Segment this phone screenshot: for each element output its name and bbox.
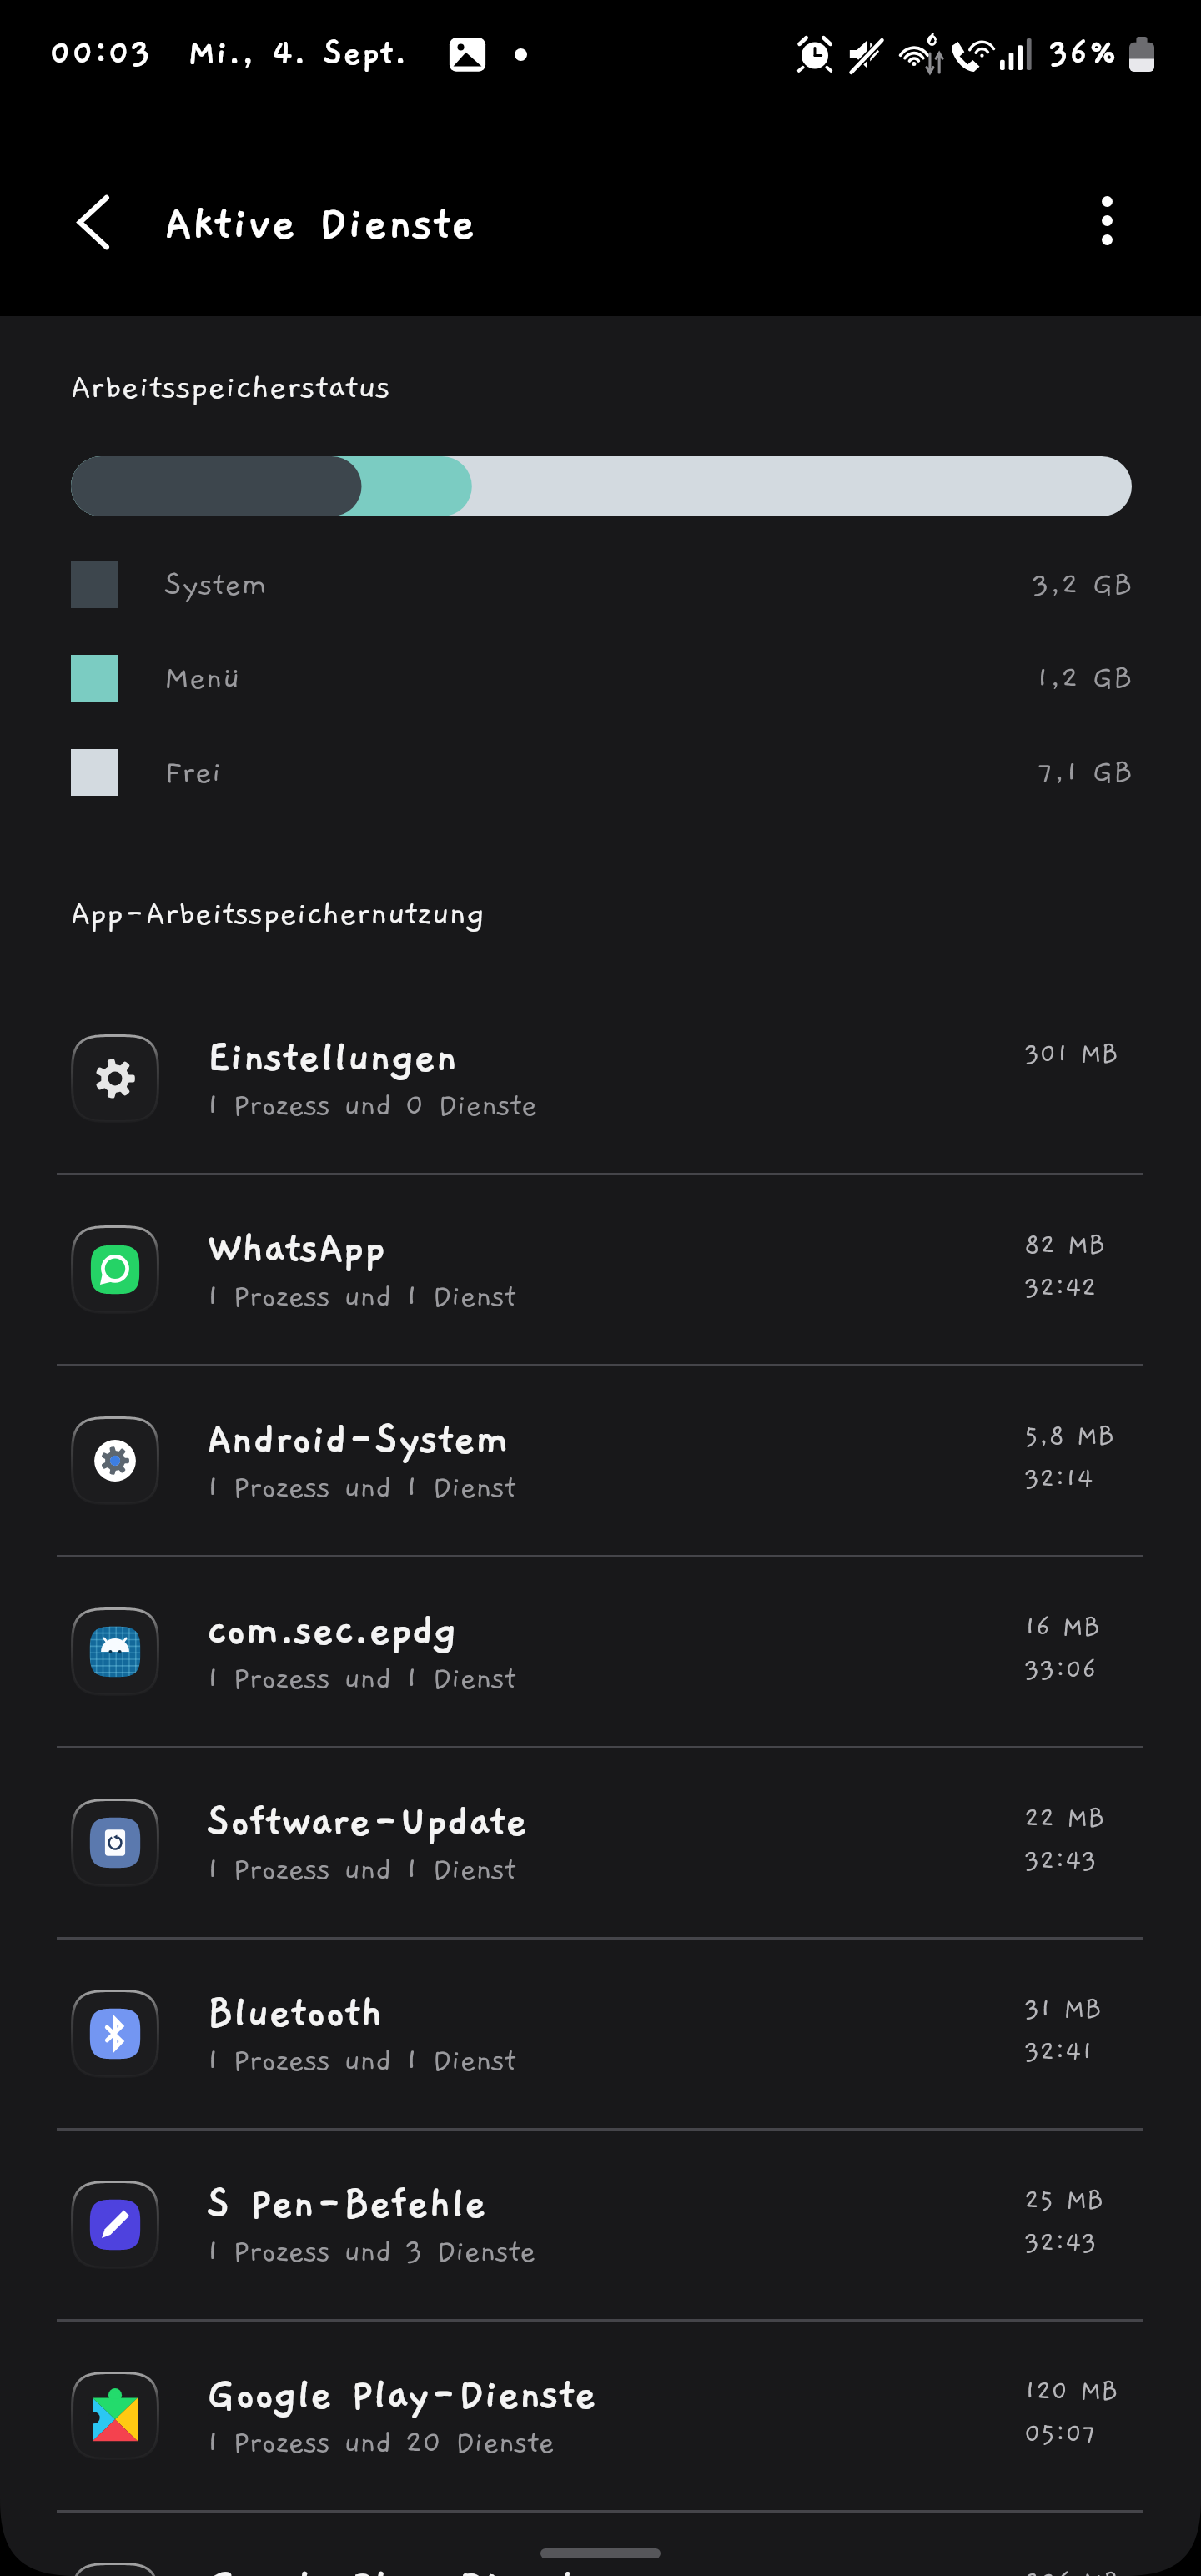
staticText: 33:06 bbox=[1024, 1655, 1097, 1684]
staticText: 36% bbox=[1048, 33, 1118, 73]
staticText: 32:43 bbox=[1024, 2228, 1098, 2257]
staticText: Google Play-Dienste bbox=[207, 2563, 596, 2576]
button[interactable]: Software-Update bbox=[0, 1748, 1201, 1939]
staticText: Android-System bbox=[207, 1416, 509, 1463]
staticText: 1,2 GB bbox=[1036, 662, 1133, 695]
button[interactable]: Back bbox=[55, 187, 125, 257]
staticText: 7,1 GB bbox=[1038, 756, 1133, 789]
staticText: 22 MB bbox=[1024, 1804, 1105, 1833]
button[interactable]: S Pen-Befehle bbox=[0, 2130, 1201, 2321]
staticText: 1 Prozess und 1 Dienst bbox=[206, 2044, 516, 2078]
staticText: 00:03 bbox=[49, 33, 152, 73]
staticText: Aktive Dienste bbox=[164, 199, 476, 250]
button[interactable]: Android-System bbox=[0, 1366, 1201, 1557]
staticText: 1 Prozess und 20 Dienste bbox=[206, 2426, 555, 2460]
staticText: 301 MB bbox=[1024, 1039, 1118, 1069]
staticText: 1 Prozess und 1 Dienst bbox=[206, 1280, 516, 1314]
staticText: 1 Prozess und 0 Dienste bbox=[206, 1089, 537, 1123]
staticText: 206 MB bbox=[1024, 2568, 1120, 2576]
staticText: 1 Prozess und 1 Dienst bbox=[206, 1662, 516, 1696]
staticText: 05:07 bbox=[1024, 2419, 1097, 2448]
button[interactable]: WhatsApp bbox=[0, 1175, 1201, 1366]
staticText: Google Play-Dienste bbox=[207, 2372, 596, 2418]
staticText: System bbox=[164, 567, 268, 602]
staticText: 82 MB bbox=[1024, 1230, 1105, 1260]
staticText: 1 Prozess und 1 Dienst bbox=[206, 1853, 516, 1887]
staticText: 3,2 GB bbox=[1032, 568, 1133, 601]
button[interactable]: Bluetooth bbox=[0, 1939, 1201, 2130]
button[interactable]: com.sec.epdg bbox=[0, 1557, 1201, 1748]
staticText: Arbeitsspeicherstatus bbox=[71, 370, 391, 406]
staticText: 1 Prozess und 3 Dienste bbox=[206, 2235, 536, 2269]
staticText: com.sec.epdg bbox=[207, 1607, 457, 1654]
button[interactable]: Google Play-Dienste bbox=[0, 2321, 1201, 2512]
staticText: WhatsApp bbox=[207, 1225, 385, 1272]
staticText: Men bbox=[164, 661, 223, 696]
staticText: 31 MB bbox=[1024, 1995, 1102, 2024]
button[interactable]: Google Play-Dienste bbox=[0, 2512, 1201, 2576]
staticText: 25 MB bbox=[1024, 2186, 1104, 2215]
staticText: Frei bbox=[164, 755, 222, 790]
staticText: Bluetooth bbox=[207, 1990, 383, 2036]
staticText: 32:14 bbox=[1024, 1464, 1093, 1493]
staticText: 32:41 bbox=[1024, 2037, 1093, 2066]
staticText: 16 MB bbox=[1024, 1613, 1100, 1642]
staticText: 32:43 bbox=[1024, 1846, 1098, 1875]
button[interactable]: Einstellungen bbox=[0, 984, 1201, 1175]
staticText: App-Arbeitsspeichernutzung bbox=[71, 896, 485, 932]
staticText: 32:42 bbox=[1024, 1273, 1097, 1302]
button[interactable]: More options bbox=[1072, 185, 1142, 255]
staticText: 5,8 MB bbox=[1024, 1421, 1115, 1451]
staticText: u bbox=[223, 661, 240, 696]
staticText: S Pen-Befehle bbox=[207, 2181, 486, 2227]
staticText: Einstellungen bbox=[207, 1034, 458, 1081]
staticText: 120 MB bbox=[1024, 2377, 1118, 2406]
staticText: 1 Prozess und 1 Dienst bbox=[206, 1471, 516, 1505]
staticText: Mi., 4. Sept. bbox=[188, 33, 408, 73]
staticText: Software-Update bbox=[207, 1799, 528, 1845]
